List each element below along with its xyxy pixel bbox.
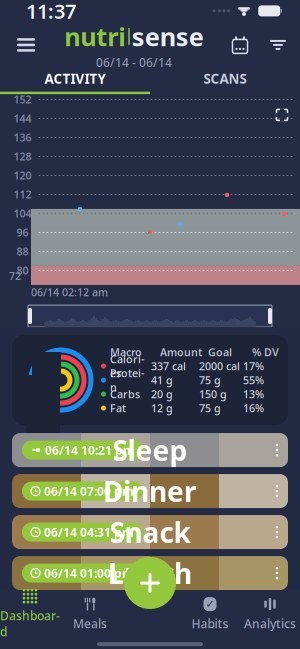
- staticText: 17%: [243, 359, 264, 373]
- staticText: Calories: [110, 352, 144, 380]
- staticText: Dinner: [103, 472, 197, 510]
- button[interactable]: ACTIVITY: [0, 66, 150, 92]
- staticText: 55%: [243, 373, 264, 387]
- staticText: 88: [16, 244, 28, 258]
- staticText: % DV: [252, 345, 279, 359]
- staticText: Macro: [110, 345, 142, 359]
- staticText: 144: [13, 111, 31, 125]
- button[interactable]: ✓: [180, 594, 240, 634]
- staticText: 150 g: [199, 387, 227, 401]
- button[interactable]: Calendar: [220, 25, 260, 65]
- staticText: 337 cal: [151, 359, 186, 373]
- staticText: 75 g: [199, 373, 221, 387]
- staticText: 06/14 02:12 am: [31, 285, 108, 299]
- staticText: 120: [13, 168, 31, 182]
- staticText: 12 g: [151, 401, 173, 415]
- staticText: Protein: [110, 366, 144, 394]
- staticText: Lunch: [108, 554, 192, 592]
- staticText: sense: [132, 20, 204, 53]
- button[interactable]: 06/14 01:00 pm: [0, 556, 300, 590]
- staticText: Habits: [191, 616, 228, 631]
- staticText: 128: [13, 149, 31, 163]
- staticText: Meals: [73, 616, 107, 631]
- staticText: Fat: [110, 401, 126, 415]
- staticText: ACTIVITY: [44, 70, 105, 87]
- staticText: 06/14 - 06/14: [96, 54, 172, 70]
- staticText: 104: [13, 206, 31, 220]
- button[interactable]: Fullscreen: [270, 103, 294, 127]
- staticText: 06/14 07:00 pm: [44, 483, 134, 499]
- staticText: 80: [16, 263, 28, 277]
- staticText: 96: [16, 225, 28, 239]
- staticText: ✓: [205, 598, 214, 610]
- button[interactable]: Meals: [60, 594, 120, 634]
- staticText: 11:37: [26, 0, 76, 24]
- staticText: 152: [13, 92, 31, 106]
- button[interactable]: Analytics: [240, 594, 300, 634]
- button[interactable]: Filter: [260, 25, 296, 65]
- staticText: Sleep: [112, 431, 187, 469]
- staticText: 112: [13, 187, 31, 201]
- button[interactable]: Dashboard: [0, 594, 60, 634]
- button[interactable]: 06/14 07:00 pm: [0, 474, 300, 508]
- staticText: 136: [13, 130, 31, 144]
- staticText: 06/14 10:21 pm: [45, 442, 135, 458]
- staticText: 06/14 01:00 pm: [44, 565, 134, 581]
- staticText: 13%: [243, 387, 264, 401]
- staticText: SCANS: [203, 70, 246, 87]
- staticText: Dashboard: [0, 608, 60, 639]
- staticText: 16%: [243, 401, 264, 415]
- button[interactable]: Menu: [4, 25, 48, 65]
- staticText: Carbs: [110, 387, 140, 401]
- staticText: Snack: [109, 513, 190, 551]
- button[interactable]: 06/14 10:21 pm: [0, 433, 300, 467]
- staticText: nutri: [64, 20, 126, 53]
- staticText: Analytics: [244, 616, 296, 631]
- staticText: 2000 cal: [199, 359, 240, 373]
- staticText: Goal: [208, 345, 232, 359]
- staticText: 72: [9, 269, 21, 283]
- button[interactable]: SCANS: [150, 66, 300, 92]
- staticText: 75 g: [199, 401, 221, 415]
- staticText: 41 g: [151, 373, 173, 387]
- button[interactable]: 06/14 04:31 pm: [0, 515, 300, 549]
- button[interactable]: Add entry: [122, 555, 178, 611]
- staticText: 20 g: [151, 387, 173, 401]
- staticText: 06/14 04:31 pm: [44, 524, 134, 540]
- staticText: Amount: [160, 345, 202, 359]
